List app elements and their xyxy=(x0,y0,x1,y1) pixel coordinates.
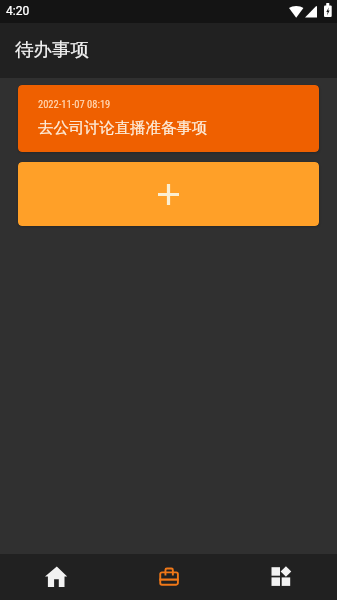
staticText: 4:20 xyxy=(6,4,30,18)
staticText: 去公司讨论直播准备事项 xyxy=(38,118,208,137)
button[interactable]: 2022-11-07 08:19 xyxy=(18,85,319,152)
button[interactable]: Tasks xyxy=(113,554,225,600)
staticText: 待办事项 xyxy=(15,38,89,61)
button[interactable]: Categories xyxy=(225,554,337,600)
button[interactable]: Home xyxy=(0,554,113,600)
button[interactable]: Add todo xyxy=(18,162,319,226)
staticText: 2022-11-07 08:19 xyxy=(38,98,111,110)
